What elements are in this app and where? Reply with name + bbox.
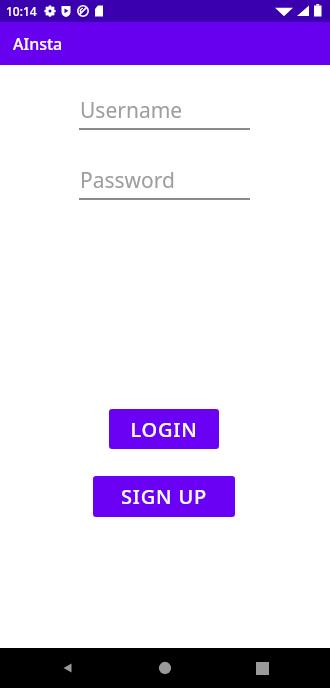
staticText: SIGN UP — [121, 483, 207, 510]
staticText: AInsta — [13, 33, 63, 55]
button[interactable]: Back — [50, 650, 86, 686]
button[interactable]: Username — [79, 96, 250, 130]
button[interactable]: Recent apps — [244, 650, 280, 686]
staticText: Username — [80, 96, 183, 125]
button[interactable]: LOGIN — [109, 409, 219, 449]
staticText: Password — [80, 166, 175, 195]
button[interactable]: SIGN UP — [93, 476, 235, 517]
staticText: LOGIN — [130, 416, 198, 443]
button[interactable]: Password — [79, 166, 250, 200]
staticText: 10:14 — [6, 3, 37, 19]
button[interactable]: Home — [147, 650, 183, 686]
